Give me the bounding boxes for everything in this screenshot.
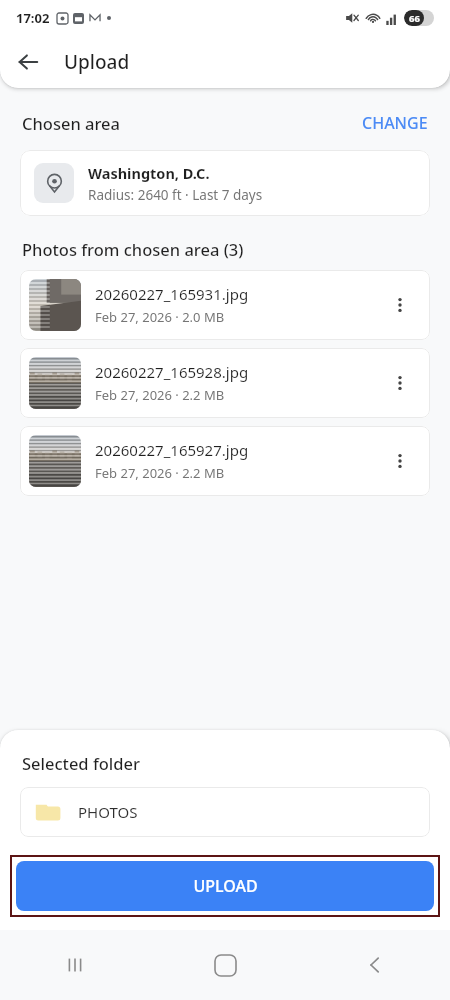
- staticText: Photos from chosen area (3): [22, 238, 244, 260]
- staticText: Radius: 2640 ft · Last 7 days: [88, 186, 263, 204]
- button[interactable]: More options: [379, 284, 421, 326]
- staticText: 66: [409, 12, 420, 25]
- staticText: 17:02: [16, 9, 50, 27]
- button[interactable]: CHANGE: [358, 108, 432, 138]
- staticText: UPLOAD: [193, 875, 258, 897]
- staticText: PHOTOS: [78, 802, 138, 822]
- button[interactable]: 20260227_165927.jpg: [20, 426, 430, 496]
- staticText: Feb 27, 2026 · 2.0 MB: [95, 308, 225, 326]
- button[interactable]: 20260227_165928.jpg: [20, 348, 430, 418]
- staticText: Chosen area: [22, 112, 121, 134]
- button[interactable]: PHOTOS: [20, 787, 430, 837]
- button[interactable]: More options: [379, 362, 421, 404]
- button[interactable]: Back: [8, 42, 48, 82]
- staticText: Feb 27, 2026 · 2.2 MB: [95, 386, 225, 404]
- staticText: Upload: [64, 49, 130, 75]
- staticText: Selected folder: [22, 752, 140, 774]
- button[interactable]: Back: [300, 930, 450, 1000]
- staticText: 20260227_165931.jpg: [95, 284, 249, 304]
- button[interactable]: Home: [150, 930, 300, 1000]
- button[interactable]: More options: [379, 440, 421, 482]
- button[interactable]: 20260227_165931.jpg: [20, 270, 430, 340]
- button[interactable]: Washington, D.C.: [20, 150, 430, 216]
- staticText: CHANGE: [362, 112, 428, 134]
- button[interactable]: Recent apps: [0, 930, 150, 1000]
- staticText: Feb 27, 2026 · 2.2 MB: [95, 464, 225, 482]
- staticText: Washington, D.C.: [88, 163, 210, 183]
- staticText: 20260227_165928.jpg: [95, 362, 249, 382]
- staticText: 20260227_165927.jpg: [95, 440, 249, 460]
- button[interactable]: UPLOAD: [16, 861, 434, 911]
